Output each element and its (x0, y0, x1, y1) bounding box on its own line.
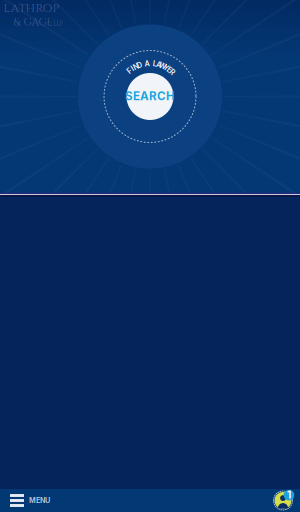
staticText: LATHROP (3, 0, 59, 16)
staticText: N (133, 62, 138, 71)
staticText: Y (163, 63, 168, 72)
staticText: R (170, 68, 175, 76)
staticText: LLP (53, 20, 62, 28)
staticText: SEARCH (125, 89, 175, 103)
staticText: E (167, 65, 171, 74)
staticText: 1 (287, 489, 291, 501)
staticText: W (159, 62, 166, 70)
staticText: MENU (29, 496, 50, 505)
staticText: & GAGE (13, 15, 52, 29)
staticText: A (145, 59, 150, 68)
staticText: I (131, 64, 133, 73)
button[interactable]: MENU (0, 489, 67, 512)
button[interactable]: Contacts (273, 489, 300, 512)
staticText: D (137, 61, 142, 69)
staticText: A (156, 60, 161, 69)
staticText (142, 60, 144, 68)
staticText: L (153, 60, 157, 68)
staticText: F (127, 67, 131, 75)
